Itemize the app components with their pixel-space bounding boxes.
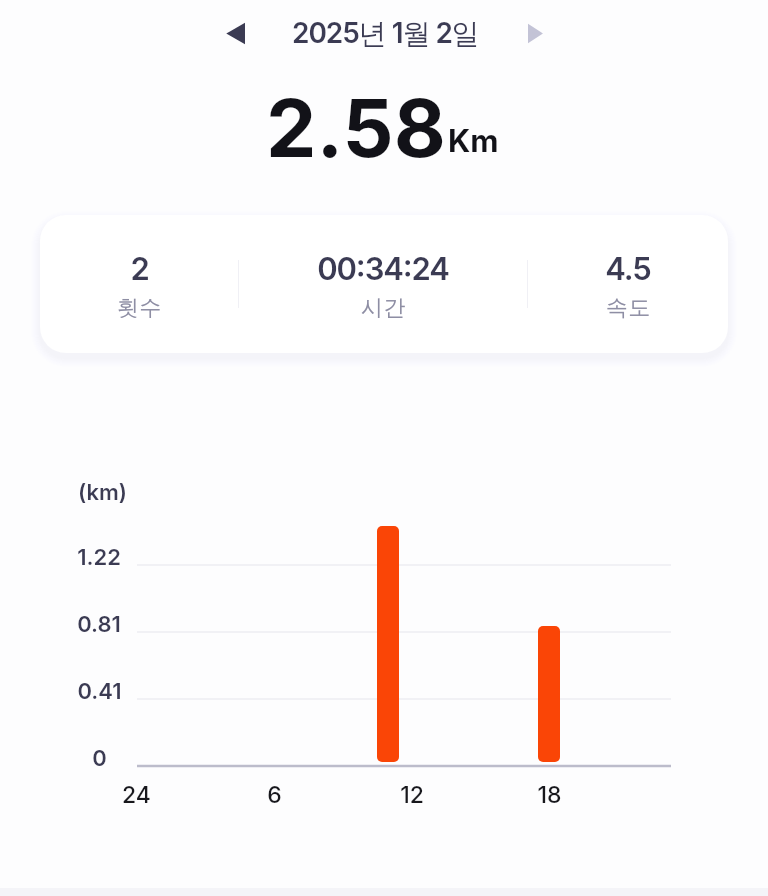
staticText: 24	[122, 781, 151, 809]
staticText: 1.22	[77, 544, 121, 571]
staticText: 횟수	[117, 294, 162, 322]
staticText: 00:34:24	[317, 250, 449, 288]
button[interactable]: 2	[40, 219, 238, 353]
staticText: 0.41	[77, 678, 122, 705]
staticText: 2.58	[266, 79, 446, 171]
button[interactable]: Previous day	[213, 9, 261, 57]
staticText: 4.5	[605, 250, 651, 288]
staticText: 12	[400, 781, 424, 809]
staticText: 18	[537, 781, 562, 809]
staticText: (km)	[78, 479, 128, 506]
staticText: 2	[130, 250, 149, 288]
staticText: 2025년 1월 2일	[292, 16, 479, 51]
staticText: Km	[448, 122, 499, 160]
staticText: 속도	[606, 294, 651, 322]
staticText: 0	[92, 745, 107, 772]
button[interactable]: 4.5	[528, 219, 728, 353]
button[interactable]: 00:34:24	[239, 219, 527, 353]
button[interactable]: Next day	[510, 9, 558, 57]
staticText: 시간	[361, 294, 406, 322]
staticText: 0.81	[77, 611, 121, 638]
staticText: 6	[267, 781, 282, 809]
button[interactable]: 2	[40, 215, 728, 353]
button[interactable]: Daily distance chart	[60, 455, 700, 820]
